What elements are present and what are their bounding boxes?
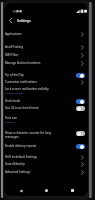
button[interactable]: Advanced Settings [4,169,88,175]
button[interactable] [76,106,85,111]
staticText: Customize notifications [5,80,37,84]
button[interactable] [76,144,85,149]
button[interactable]: Enable delivery reports [4,143,88,149]
button[interactable]: Applications [4,31,88,37]
staticText: Show a character counter for long [5,131,52,135]
button[interactable]: Home [40,184,53,196]
staticText: Show messages [5,91,24,94]
staticText: Anti-Phishing [5,45,24,49]
button[interactable]: Back [14,184,27,196]
button[interactable]: Lock screen notification visibility [4,86,88,92]
staticText: Tip of the Day [5,73,24,77]
button[interactable]: Recent apps [66,184,79,196]
button[interactable]: Customize notifications [4,79,88,85]
button[interactable] [76,131,85,136]
staticText: messages [5,135,19,139]
button[interactable]: Use 24-hour time format [4,105,88,111]
staticText: Advanced Settings [5,170,31,174]
button[interactable]: Font size [4,115,88,121]
button[interactable]: Dark mode [4,98,88,104]
staticText: Medium [5,120,15,123]
staticText: Settings [17,18,31,23]
staticText: Use 24-hour time format [5,106,39,110]
staticText: Guard Identity [5,162,25,166]
staticText: Shift to default Settings [5,155,37,159]
staticText: SMS Filter [5,53,19,57]
button[interactable]: Back [6,16,15,25]
staticText: Applications [5,32,22,36]
button[interactable] [76,99,85,104]
button[interactable]: Shift to default Settings [4,154,88,160]
button[interactable]: Anti-Phishing [4,44,88,50]
button[interactable]: Show a character counter for long [4,130,88,136]
staticText: Lock screen notification visibility [5,87,49,91]
button[interactable]: SMS Filter [4,52,88,58]
staticText: Manage blocked numbers [5,61,41,65]
button[interactable]: Tip of the Day [4,72,88,78]
staticText: Font size [5,116,17,120]
staticText: Enable delivery reports [5,144,37,148]
button[interactable]: Guard Identity [4,161,88,167]
staticText: Dark mode [5,99,21,103]
button[interactable]: Manage blocked numbers [4,60,88,66]
button[interactable] [76,73,85,78]
